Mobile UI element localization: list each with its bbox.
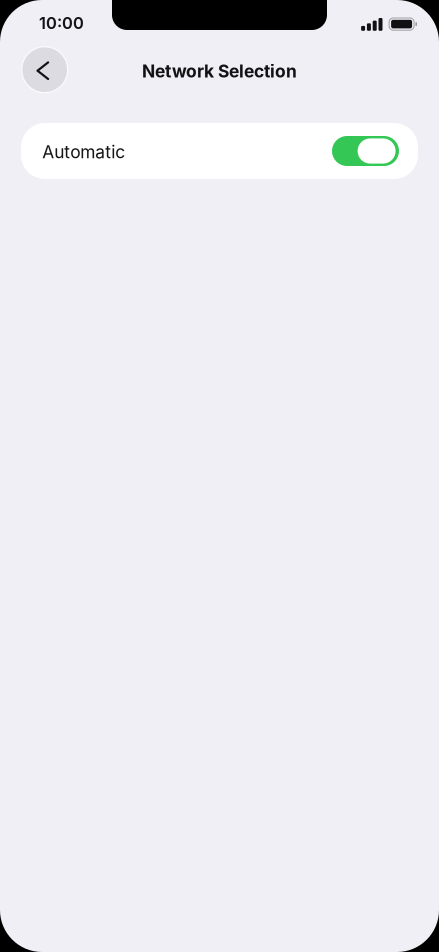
button[interactable]: Automatic [21,123,418,179]
staticText: Automatic [42,141,125,162]
staticText: Network Selection [142,61,297,82]
button[interactable]: Back [22,46,68,92]
staticText: 10:00 [39,13,84,33]
